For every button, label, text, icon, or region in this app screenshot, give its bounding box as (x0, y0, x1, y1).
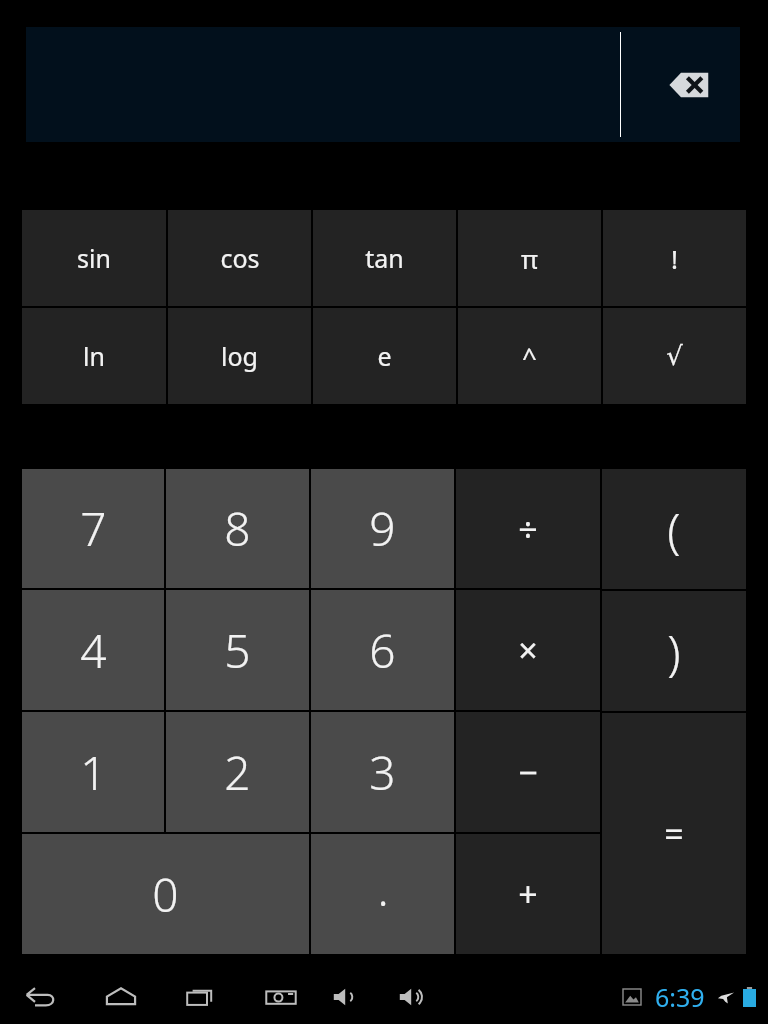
button[interactable]: ln (22, 308, 166, 404)
staticText: 2 (224, 741, 251, 804)
button[interactable]: 1 (22, 712, 164, 832)
staticText: 6 (369, 619, 396, 682)
staticText: ) (667, 619, 681, 684)
staticText: sin (77, 241, 111, 275)
button[interactable]: tan (313, 210, 456, 306)
button[interactable]: 8 (166, 469, 309, 588)
button[interactable]: Screenshot (254, 970, 308, 1024)
staticText: ÷ (518, 506, 538, 552)
staticText: 5 (224, 619, 251, 682)
staticText: ^ (522, 339, 537, 374)
button[interactable]: e (313, 308, 456, 404)
button[interactable]: 9 (311, 469, 454, 588)
staticText: π (521, 241, 538, 276)
staticText: log (221, 339, 258, 373)
button[interactable]: 0 (22, 834, 309, 954)
staticText: 7 (80, 497, 107, 560)
button[interactable]: 3 (311, 712, 454, 832)
staticText: = (664, 811, 684, 857)
button[interactable]: Home (94, 970, 148, 1024)
staticText: − (518, 749, 538, 795)
button[interactable]: log (168, 308, 311, 404)
button[interactable]: sin (22, 210, 166, 306)
button[interactable]: × (456, 590, 600, 710)
button[interactable]: ( (602, 469, 746, 589)
staticText: + (518, 871, 538, 917)
staticText: × (518, 627, 538, 673)
button[interactable]: ) (602, 591, 746, 711)
staticText: 4 (80, 619, 107, 682)
staticText: ! (671, 241, 678, 276)
staticText: 1 (80, 741, 107, 804)
button[interactable]: ^ (458, 308, 601, 404)
button[interactable]: π (458, 210, 601, 306)
staticText: ( (667, 497, 681, 562)
button[interactable]: + (456, 834, 600, 954)
button[interactable]: Volume up (386, 970, 440, 1024)
button[interactable]: √ (603, 308, 746, 404)
button[interactable]: 6 (311, 590, 454, 710)
staticText: ln (83, 339, 105, 373)
button[interactable]: Back (14, 970, 68, 1024)
button[interactable]: 4 (22, 590, 164, 710)
button[interactable]: − (456, 712, 600, 832)
button[interactable]: Backspace (26, 27, 740, 142)
button[interactable]: . (311, 834, 454, 954)
staticText: 8 (224, 497, 251, 560)
staticText: 3 (369, 741, 396, 804)
staticText: 0 (152, 863, 179, 926)
button[interactable]: = (602, 713, 746, 954)
button[interactable]: Recent apps (174, 970, 228, 1024)
button[interactable]: Backspace (621, 27, 740, 142)
button[interactable]: ! (603, 210, 746, 306)
staticText: e (377, 339, 392, 373)
button[interactable]: 5 (166, 590, 309, 710)
button[interactable]: cos (168, 210, 311, 306)
staticText: 6:39 (655, 980, 705, 1014)
staticText: √ (666, 341, 683, 371)
staticText: tan (365, 241, 404, 275)
button[interactable]: 2 (166, 712, 309, 832)
button[interactable]: ÷ (456, 469, 600, 588)
button[interactable]: Volume down (320, 970, 374, 1024)
staticText: 9 (369, 497, 396, 560)
staticText: cos (220, 241, 260, 275)
staticText: . (377, 857, 389, 920)
button[interactable]: 7 (22, 469, 164, 588)
